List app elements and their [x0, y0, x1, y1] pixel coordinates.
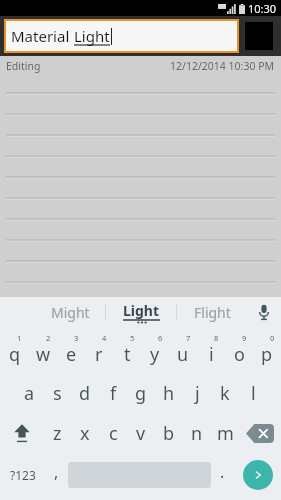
button[interactable]: 7	[169, 330, 197, 373]
button[interactable]: b	[155, 413, 183, 453]
button[interactable]: 9	[225, 330, 253, 373]
staticText: c	[109, 421, 118, 446]
staticText: h	[163, 381, 175, 406]
button[interactable]: a	[15, 373, 43, 413]
button[interactable]: c	[99, 413, 127, 453]
staticText: Flight	[194, 303, 231, 322]
button[interactable]: z	[43, 413, 71, 453]
button[interactable]: ,	[45, 453, 68, 497]
button[interactable]: k	[211, 373, 239, 413]
staticText: e	[66, 342, 77, 367]
staticText: y	[150, 342, 160, 367]
staticText: s	[53, 381, 62, 406]
staticText: .	[220, 461, 225, 483]
staticText: u	[177, 342, 189, 367]
staticText: t	[124, 342, 131, 367]
button[interactable]: Might	[36, 297, 105, 327]
button[interactable]: d	[71, 373, 99, 413]
button[interactable]: 0	[253, 330, 281, 373]
staticText: 3	[74, 333, 79, 343]
staticText: k	[220, 381, 230, 406]
button[interactable]: m	[211, 413, 239, 453]
button[interactable]: Voice input	[247, 297, 281, 327]
button[interactable]: 1	[0, 330, 29, 373]
staticText: ?123	[10, 467, 36, 483]
staticText: m	[217, 421, 234, 446]
staticText: q	[9, 342, 21, 367]
staticText: v	[136, 421, 146, 446]
button[interactable]: x	[71, 413, 99, 453]
button[interactable]: 5	[113, 330, 141, 373]
button[interactable]: Material	[6, 21, 237, 51]
staticText: Light	[123, 301, 160, 320]
staticText: 7	[186, 333, 191, 343]
button[interactable]: l	[239, 373, 267, 413]
staticText: i	[209, 342, 214, 367]
button[interactable]: f	[99, 373, 127, 413]
button[interactable]: j	[183, 373, 211, 413]
staticText: Editing	[6, 59, 41, 73]
button[interactable]: g	[127, 373, 155, 413]
staticText: Might	[51, 303, 90, 322]
button[interactable]: Flight	[177, 297, 247, 327]
staticText: 8	[214, 333, 219, 343]
staticText: ,	[54, 461, 59, 483]
staticText: j	[195, 381, 200, 406]
staticText: 0	[270, 333, 275, 343]
button[interactable]: Backspace	[239, 413, 281, 453]
staticText: p	[261, 342, 273, 367]
staticText: g	[135, 381, 147, 406]
button[interactable]: n	[183, 413, 211, 453]
staticText: r	[95, 342, 103, 367]
staticText: Light	[74, 26, 110, 46]
staticText: l	[251, 381, 256, 406]
staticText: Material	[11, 26, 74, 46]
button[interactable]: h	[155, 373, 183, 413]
button[interactable]: 4	[85, 330, 113, 373]
button[interactable]: 2	[29, 330, 57, 373]
staticText: w	[36, 342, 51, 367]
staticText: x	[80, 421, 90, 446]
button[interactable]: .	[211, 453, 234, 497]
staticText: 5	[130, 333, 135, 343]
staticText: n	[191, 421, 203, 446]
staticText: 2	[46, 333, 51, 343]
button[interactable]: v	[127, 413, 155, 453]
button[interactable]: s	[43, 373, 71, 413]
staticText: z	[53, 421, 62, 446]
staticText: f	[110, 381, 117, 406]
staticText: o	[234, 342, 245, 367]
staticText: 4	[102, 333, 107, 343]
staticText: 9	[242, 333, 247, 343]
button[interactable]: 8	[197, 330, 225, 373]
button[interactable]: ?123	[0, 453, 45, 497]
button[interactable]: 3	[57, 330, 85, 373]
button[interactable]: Shift	[0, 413, 43, 453]
staticText: 1	[17, 333, 22, 343]
button[interactable]: Light	[106, 297, 176, 327]
staticText: 6	[158, 333, 163, 343]
staticText: b	[163, 421, 175, 446]
button[interactable]: 6	[141, 330, 169, 373]
staticText: 10:30	[248, 1, 277, 16]
staticText: 12/12/2014 10:30 PM	[170, 59, 275, 73]
button[interactable]: Enter	[234, 453, 281, 497]
staticText: d	[79, 381, 91, 406]
staticText: a	[24, 381, 35, 406]
